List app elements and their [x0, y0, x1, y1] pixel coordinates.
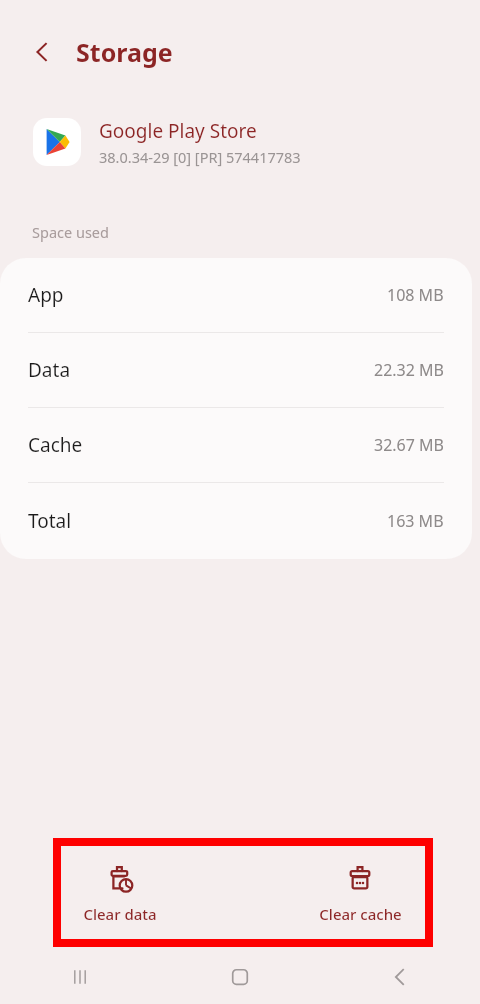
staticText: 163 MB	[387, 510, 444, 532]
staticText: Clear data	[83, 904, 157, 924]
button[interactable]: Back	[320, 950, 480, 1004]
staticText: Total	[28, 508, 72, 534]
staticText: Storage	[76, 35, 173, 69]
button[interactable]: Clear data	[0, 838, 240, 950]
button[interactable]: Google Play Store	[0, 104, 480, 180]
staticText: Clear cache	[319, 904, 402, 924]
button[interactable]: Recent apps	[0, 950, 160, 1004]
staticText: 38.0.34-29 [0] [PR] 574417783	[99, 147, 301, 167]
staticText: 108 MB	[387, 284, 444, 306]
button[interactable]: App	[0, 258, 472, 333]
button[interactable]: Navigate up	[20, 30, 64, 74]
staticText: App	[28, 282, 64, 308]
staticText: Google Play Store	[99, 118, 257, 144]
staticText: Space used	[32, 222, 109, 242]
button[interactable]: Cache	[0, 408, 472, 483]
button[interactable]: Data	[0, 333, 472, 408]
staticText: Data	[28, 357, 71, 383]
staticText: 22.32 MB	[374, 359, 444, 381]
staticText: Cache	[28, 432, 83, 458]
button[interactable]: Clear cache	[240, 838, 480, 950]
staticText: 32.67 MB	[374, 434, 444, 456]
button[interactable]: Total	[0, 483, 472, 559]
button[interactable]: Home	[160, 950, 320, 1004]
